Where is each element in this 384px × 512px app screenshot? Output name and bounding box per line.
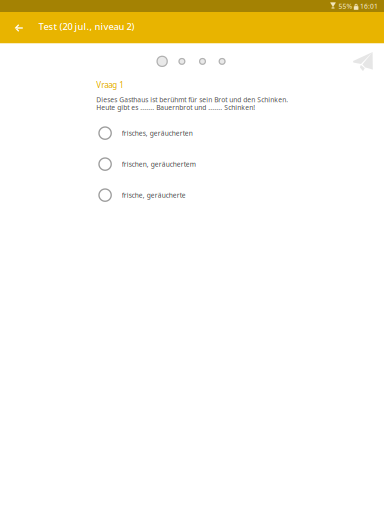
- staticText: frische, geräucherte: [122, 191, 186, 200]
- staticText: Vraag 1: [96, 79, 124, 90]
- staticText: Test (20 jul., niveau 2): [38, 20, 134, 33]
- button[interactable]: frische, geräucherte: [96, 180, 384, 211]
- button[interactable]: Send: [353, 52, 373, 71]
- staticText: frischen, geräuchertem: [122, 160, 196, 169]
- staticText: 55%: [338, 2, 352, 11]
- staticText: Dieses Gasthaus ist berühmt für sein Bro…: [96, 95, 288, 104]
- button[interactable]: frischen, geräuchertem: [96, 149, 384, 180]
- staticText: frisches, geräucherten: [122, 129, 193, 138]
- staticText: 16:01: [360, 2, 378, 11]
- staticText: Heute gibt es ....... Bauernbrot und ...…: [96, 103, 255, 112]
- button[interactable]: Back: [7, 17, 29, 39]
- button[interactable]: frisches, geräucherten: [96, 118, 384, 149]
